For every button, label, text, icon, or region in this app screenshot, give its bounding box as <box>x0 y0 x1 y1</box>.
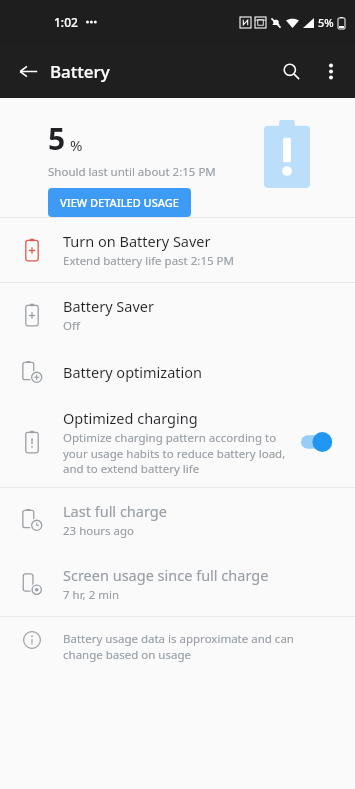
button[interactable]: VIEW DETAILED USAGE <box>48 188 191 217</box>
button[interactable]: Optimized charging <box>0 397 355 487</box>
staticText: VIEW DETAILED USAGE <box>60 195 179 210</box>
button[interactable]: Battery optimization <box>0 347 355 397</box>
staticText: Off <box>63 318 80 334</box>
staticText: Extend battery life past 2:15 PM <box>63 253 234 269</box>
staticText: 1:02 <box>54 14 78 30</box>
staticText: 7 hr, 2 min <box>63 587 120 603</box>
button[interactable]: Optimized charging toggle <box>301 431 341 453</box>
staticText: Battery Saver <box>63 296 154 316</box>
button[interactable]: Turn on Battery Saver <box>0 218 355 282</box>
staticText: Turn on Battery Saver <box>63 231 211 251</box>
button[interactable]: Battery Saver <box>0 283 355 347</box>
staticText: Optimized charging <box>63 408 198 428</box>
staticText: Battery <box>50 60 110 83</box>
button[interactable]: Screen usage since full charge <box>0 552 355 616</box>
staticText: Optimize charging pattern according to y… <box>63 430 293 476</box>
staticText: Screen usage since full charge <box>63 565 269 585</box>
staticText: Last full charge <box>63 501 167 521</box>
staticText: 5% <box>318 15 334 30</box>
button[interactable]: More options <box>311 51 351 91</box>
staticText: 5 <box>48 118 66 159</box>
staticText: 23 hours ago <box>63 523 135 539</box>
staticText: Battery usage data is approximate and ca… <box>63 631 335 662</box>
button[interactable]: Search <box>271 51 311 91</box>
staticText: % <box>70 135 83 155</box>
staticText: Should last until about 2:15 PM <box>48 164 216 180</box>
button[interactable]: Back <box>8 51 48 91</box>
staticText: Battery optimization <box>63 362 202 382</box>
button[interactable]: Last full charge <box>0 488 355 552</box>
